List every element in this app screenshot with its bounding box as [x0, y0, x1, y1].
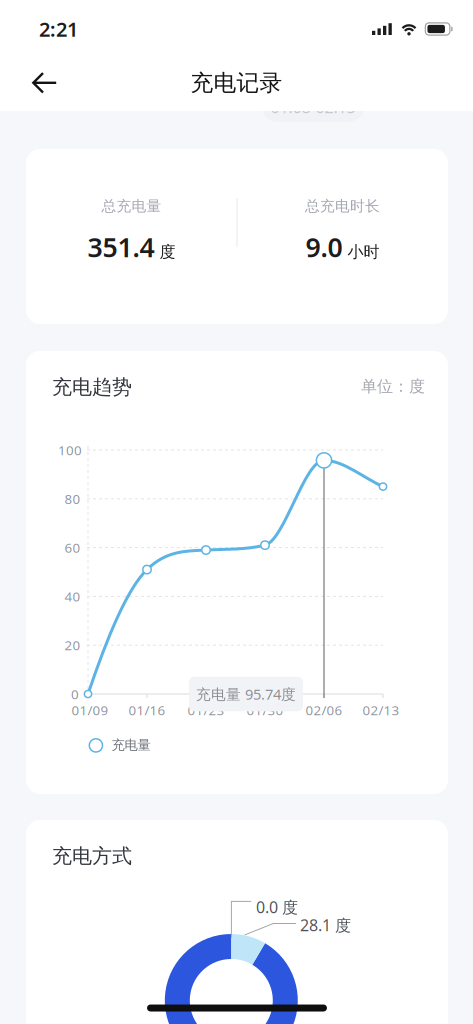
staticText: 01/30	[246, 701, 283, 719]
staticText: 60	[64, 539, 80, 556]
staticText: 充电方式	[52, 844, 132, 868]
staticText: 02/13	[362, 701, 399, 719]
staticText: 度	[159, 242, 175, 262]
staticText: 01.08-02.15	[270, 96, 355, 118]
staticText: 01/16	[128, 701, 165, 719]
staticText: 01/23	[187, 701, 224, 719]
staticText: 02/06	[305, 701, 342, 719]
staticText: 28.1 度	[300, 914, 351, 936]
staticText: 20	[64, 636, 80, 654]
staticText: 0	[71, 685, 79, 703]
staticText: 总充电量	[101, 197, 161, 215]
staticText: 9.0	[305, 229, 342, 265]
staticText: 单位：度	[361, 377, 425, 396]
staticText: 小时	[347, 242, 379, 262]
staticText: 351.4	[87, 229, 154, 265]
staticText: 总充电时长	[305, 197, 380, 215]
staticText: 80	[64, 490, 80, 508]
button[interactable]: Back	[22, 61, 68, 105]
staticText: 充电记录	[190, 69, 282, 97]
staticText: 100	[58, 441, 82, 459]
staticText: 充电量	[111, 737, 150, 753]
staticText: 2:21	[39, 16, 78, 42]
staticText: 充电量 95.74度	[196, 684, 296, 704]
staticText: 0.0 度	[256, 896, 298, 918]
staticText: 40	[64, 587, 80, 605]
staticText: 充电趋势	[52, 375, 132, 399]
staticText: 01/09	[71, 701, 108, 719]
